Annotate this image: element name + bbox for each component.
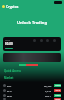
button[interactable]: Action <box>53 39 56 42</box>
staticText: Unlock Trading <box>17 20 47 25</box>
button[interactable] <box>5 48 13 49</box>
staticText: -1.1% <box>55 89 61 92</box>
staticText: Cryptos <box>6 5 19 9</box>
button[interactable]: Action <box>40 39 43 42</box>
button[interactable]: ETH <box>3 88 61 93</box>
staticText: +0.8% <box>55 94 61 97</box>
button[interactable]: BNB <box>3 93 61 98</box>
button[interactable]: Action <box>33 39 36 42</box>
staticText: -0.3% <box>55 98 61 100</box>
staticText: $0.00 <box>5 42 13 46</box>
staticText: Quick Access <box>4 69 21 73</box>
staticText: BNB <box>7 94 12 97</box>
button[interactable]: SOL <box>3 98 61 100</box>
staticText: 592.1 <box>45 94 52 97</box>
staticText: +2.4% <box>55 84 61 87</box>
staticText: 3,512 <box>45 89 52 92</box>
staticText: Total <box>5 39 10 42</box>
staticText: Market <box>4 76 14 80</box>
staticText: BTC <box>7 84 12 87</box>
button[interactable] <box>3 53 61 62</box>
staticText: ETH <box>7 89 12 92</box>
button[interactable]: BTC <box>3 83 61 88</box>
staticText: 68,432 <box>44 84 52 87</box>
button[interactable]: Action <box>46 39 49 42</box>
